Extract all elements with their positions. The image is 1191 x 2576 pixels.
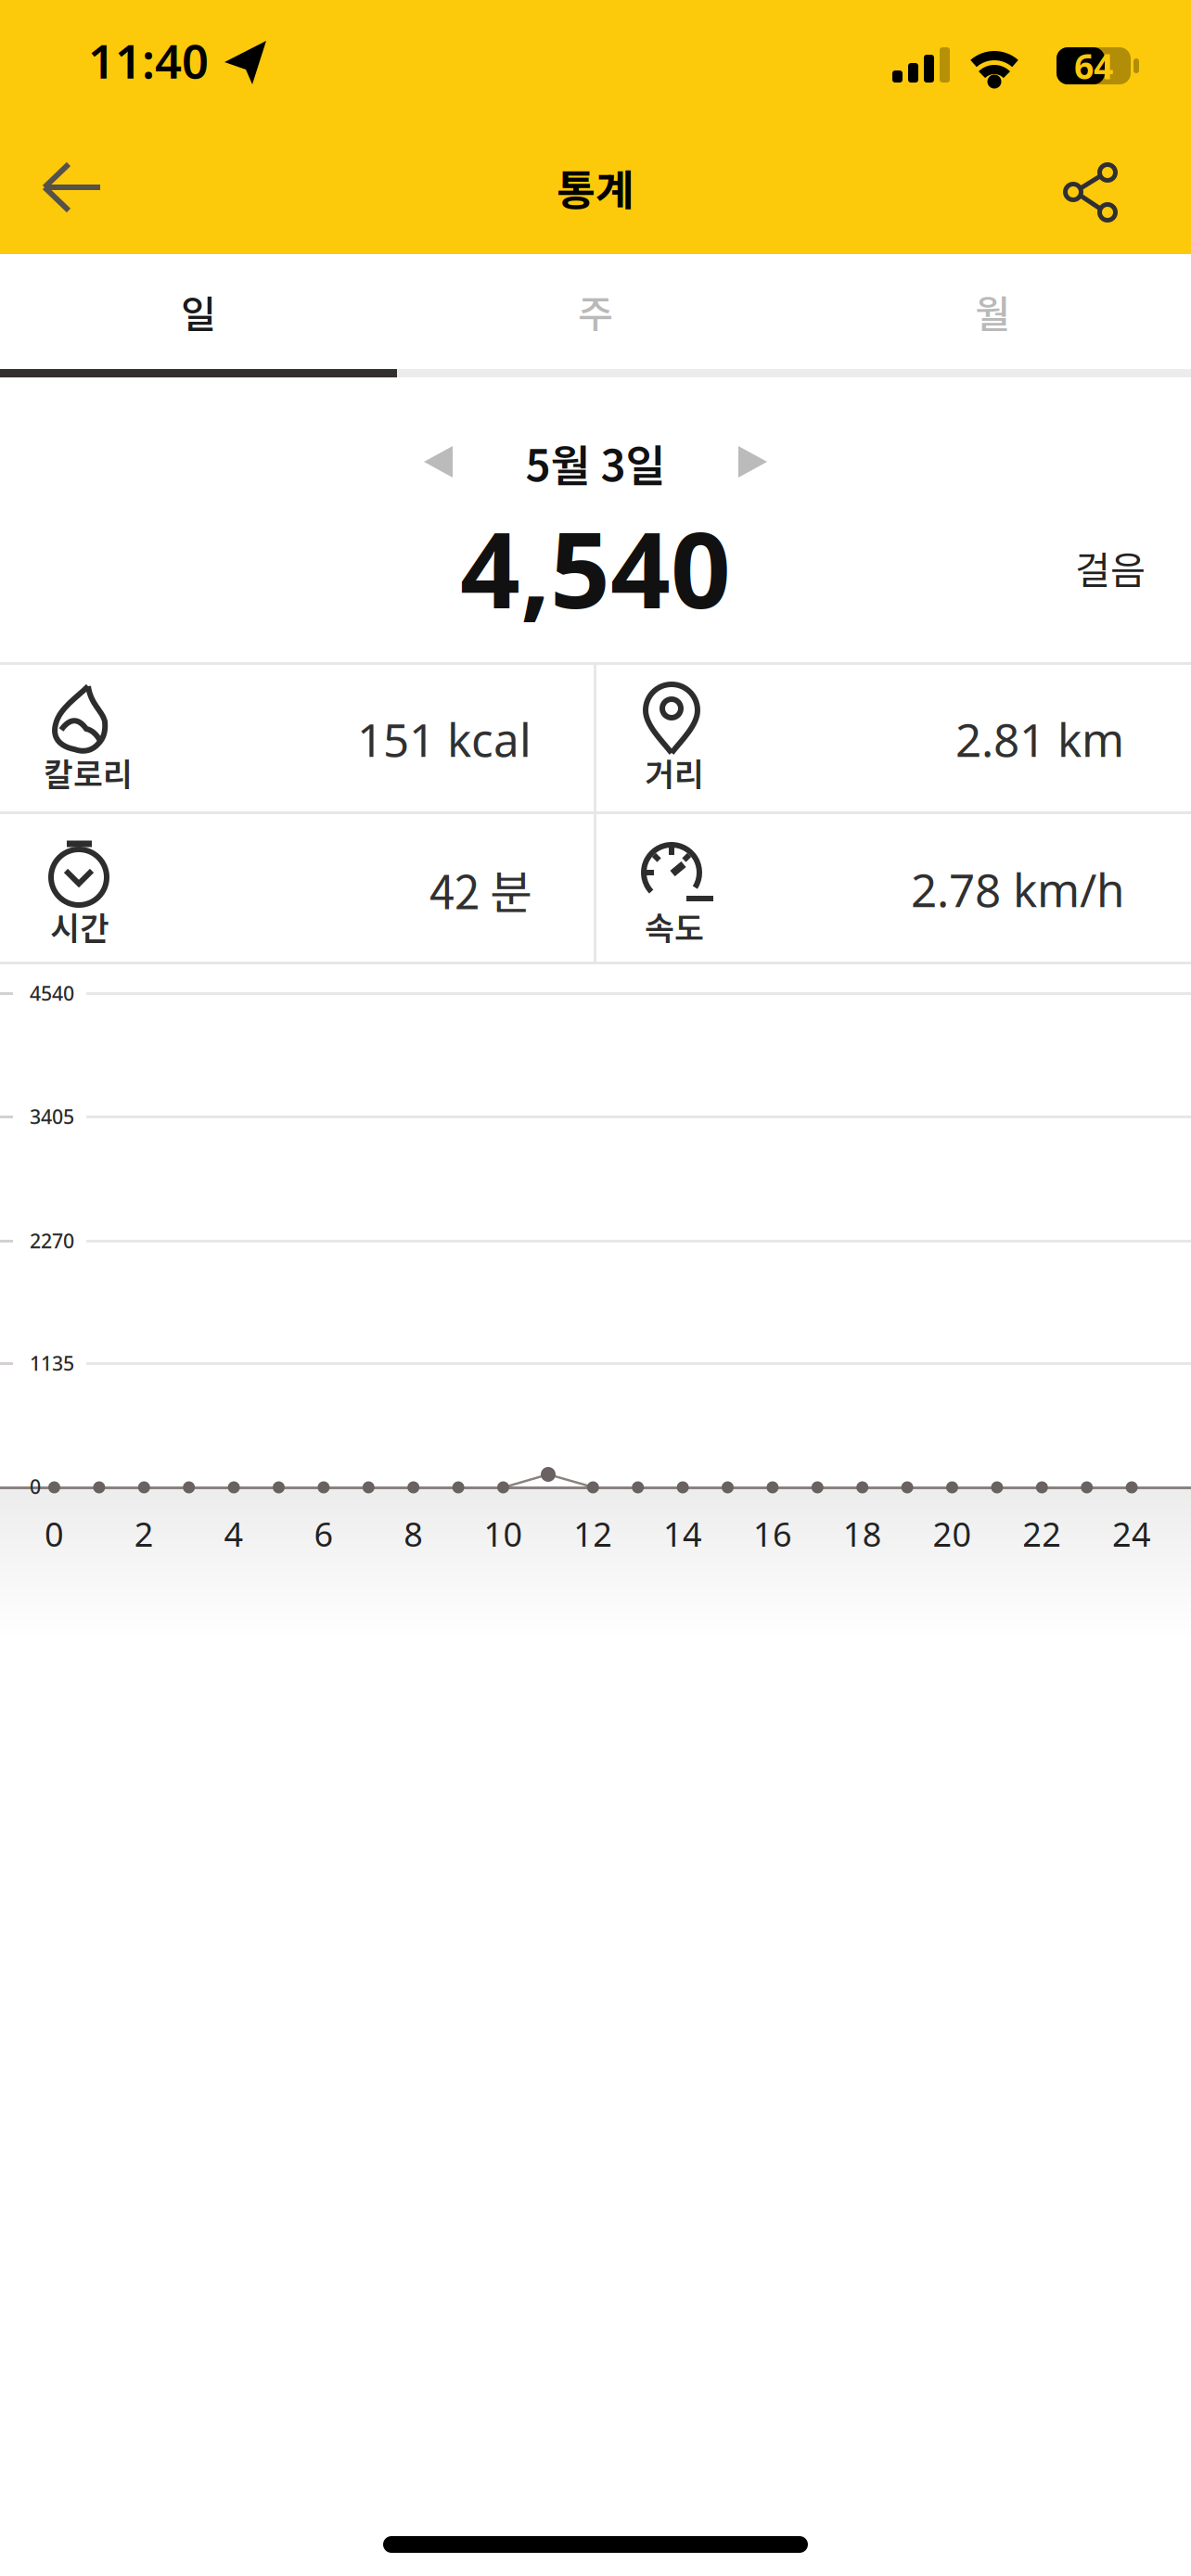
staticText: 151 kcal [357, 709, 531, 769]
staticText: 12 [574, 1512, 612, 1556]
staticText: 11:40 [88, 29, 209, 92]
staticText: 4540 [30, 980, 74, 1006]
staticText: 18 [843, 1512, 882, 1556]
staticText: 6 [314, 1512, 333, 1556]
staticText: 22 [1022, 1512, 1061, 1556]
staticText: 걸음 [1075, 540, 1146, 595]
staticText: 2 [134, 1512, 154, 1556]
staticText: 20 [933, 1512, 972, 1556]
staticText: 0 [30, 1473, 41, 1500]
staticText: 5월 3일 [525, 431, 666, 494]
staticText: 64 [1074, 43, 1113, 89]
staticText: 칼로리 [44, 749, 133, 796]
staticText: 2270 [30, 1228, 74, 1254]
button[interactable]: Back [19, 136, 139, 238]
staticText: 4,540 [460, 498, 731, 637]
button[interactable]: Next day [718, 425, 792, 499]
staticText: 24 [1112, 1512, 1151, 1556]
staticText: 거리 [645, 749, 704, 796]
button[interactable]: 일 [0, 254, 397, 369]
staticText: 0 [45, 1512, 64, 1556]
staticText: 4 [224, 1512, 244, 1556]
staticText: 속도 [645, 903, 704, 950]
button[interactable]: Share [1039, 141, 1141, 243]
staticText: 10 [484, 1512, 523, 1556]
staticText: 3405 [30, 1103, 74, 1130]
staticText: 16 [753, 1512, 792, 1556]
staticText: 42 분 [429, 856, 531, 922]
staticText: 월 [975, 284, 1010, 339]
staticText: 8 [404, 1512, 423, 1556]
staticText: 주 [578, 284, 613, 339]
staticText: 일 [181, 284, 216, 339]
staticText: 14 [663, 1512, 702, 1556]
staticText: 2.78 km/h [911, 859, 1124, 920]
staticText: 통계 [557, 157, 634, 218]
button[interactable]: 월 [794, 254, 1191, 369]
button[interactable]: Previous day [399, 425, 473, 499]
staticText: 1135 [30, 1350, 74, 1376]
button[interactable]: 주 [397, 254, 794, 369]
staticText: 2.81 km [955, 709, 1124, 769]
staticText: 시간 [50, 903, 109, 950]
